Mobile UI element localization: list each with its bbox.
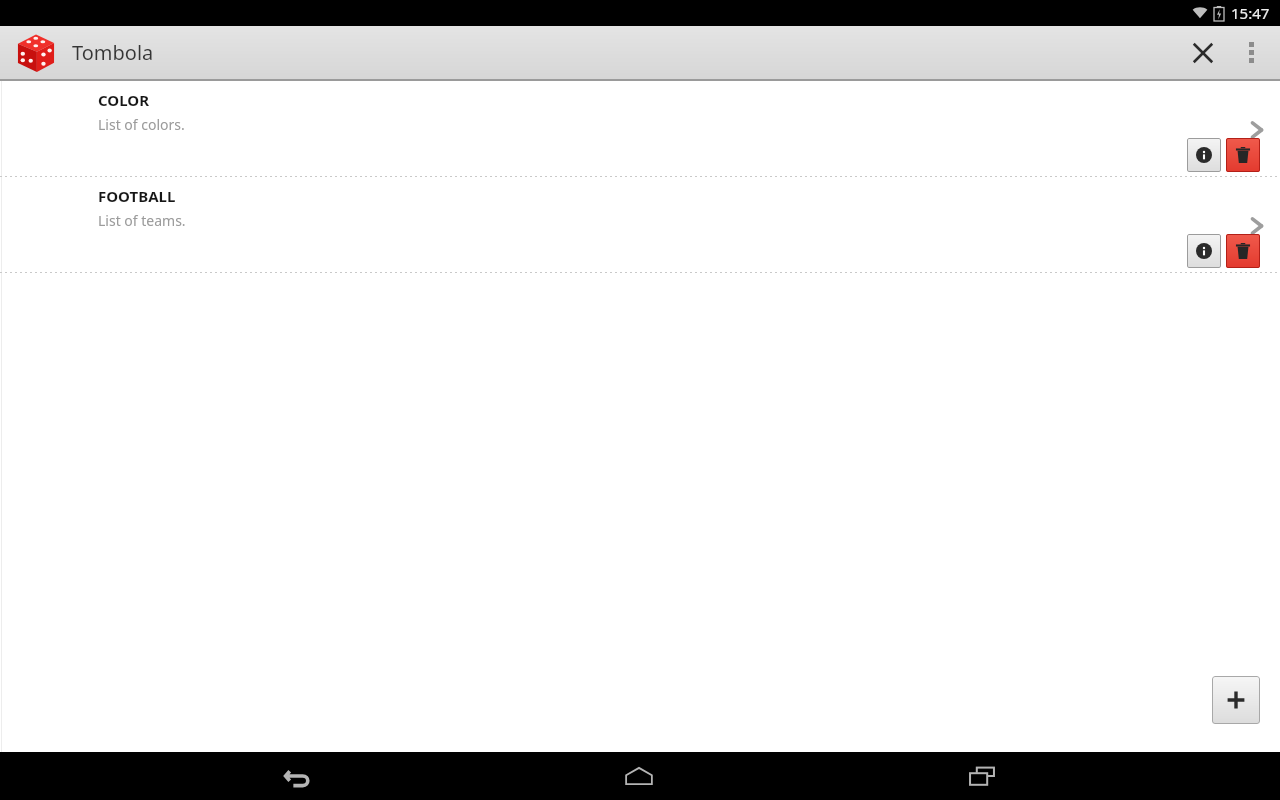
staticText: 15:47 bbox=[1231, 3, 1270, 23]
button[interactable]: Delete bbox=[1226, 234, 1260, 268]
staticText: List of colors. bbox=[98, 115, 185, 134]
button[interactable]: More options bbox=[1230, 26, 1272, 79]
button[interactable]: Add bbox=[1212, 676, 1260, 724]
button[interactable]: Recent apps bbox=[937, 752, 1027, 800]
button[interactable]: Open bbox=[1246, 215, 1268, 237]
staticText: FOOTBALL bbox=[98, 186, 176, 206]
button[interactable]: COLOR bbox=[0, 81, 1280, 176]
staticText: List of teams. bbox=[98, 211, 186, 230]
staticText: COLOR bbox=[98, 90, 149, 110]
button[interactable]: Back bbox=[252, 752, 342, 800]
button[interactable]: Info bbox=[1187, 234, 1221, 268]
button[interactable]: Info bbox=[1187, 138, 1221, 172]
button[interactable]: Delete bbox=[1226, 138, 1260, 172]
button[interactable]: Close bbox=[1176, 26, 1230, 79]
button[interactable]: Home bbox=[594, 752, 684, 800]
button[interactable]: FOOTBALL bbox=[0, 177, 1280, 272]
button[interactable]: Open bbox=[1246, 119, 1268, 141]
staticText: Tombola bbox=[72, 39, 154, 66]
